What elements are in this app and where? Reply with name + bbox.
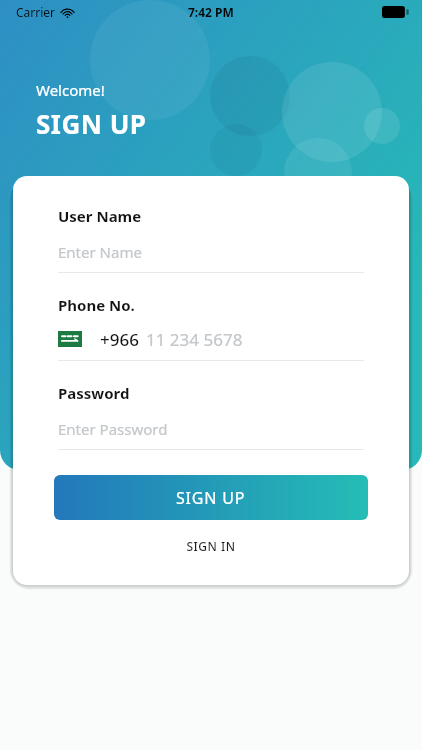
staticText: SIGN IN xyxy=(186,538,236,554)
staticText: Password xyxy=(58,383,130,403)
staticText: User Name xyxy=(58,206,142,226)
staticText: Phone No. xyxy=(58,295,135,315)
staticText: +966 xyxy=(100,328,139,350)
other: Saudi Arabia country code xyxy=(58,331,82,347)
staticText: Welcome! xyxy=(36,80,105,100)
staticText: 7:42 PM xyxy=(188,4,234,20)
staticText: Enter Name xyxy=(58,242,142,261)
staticText: SIGN UP xyxy=(176,487,246,509)
staticText: 11 234 5678 xyxy=(146,328,243,350)
staticText: Enter Password xyxy=(58,419,168,438)
button[interactable]: Enter Password xyxy=(58,419,364,438)
button[interactable]: SIGN UP xyxy=(54,475,368,520)
button[interactable]: SIGN IN xyxy=(13,533,409,559)
staticText: SIGN UP xyxy=(36,106,147,141)
button[interactable]: Enter Name xyxy=(58,242,364,261)
staticText: Carrier xyxy=(16,4,56,20)
button[interactable]: Saudi Arabia country code xyxy=(58,328,364,350)
